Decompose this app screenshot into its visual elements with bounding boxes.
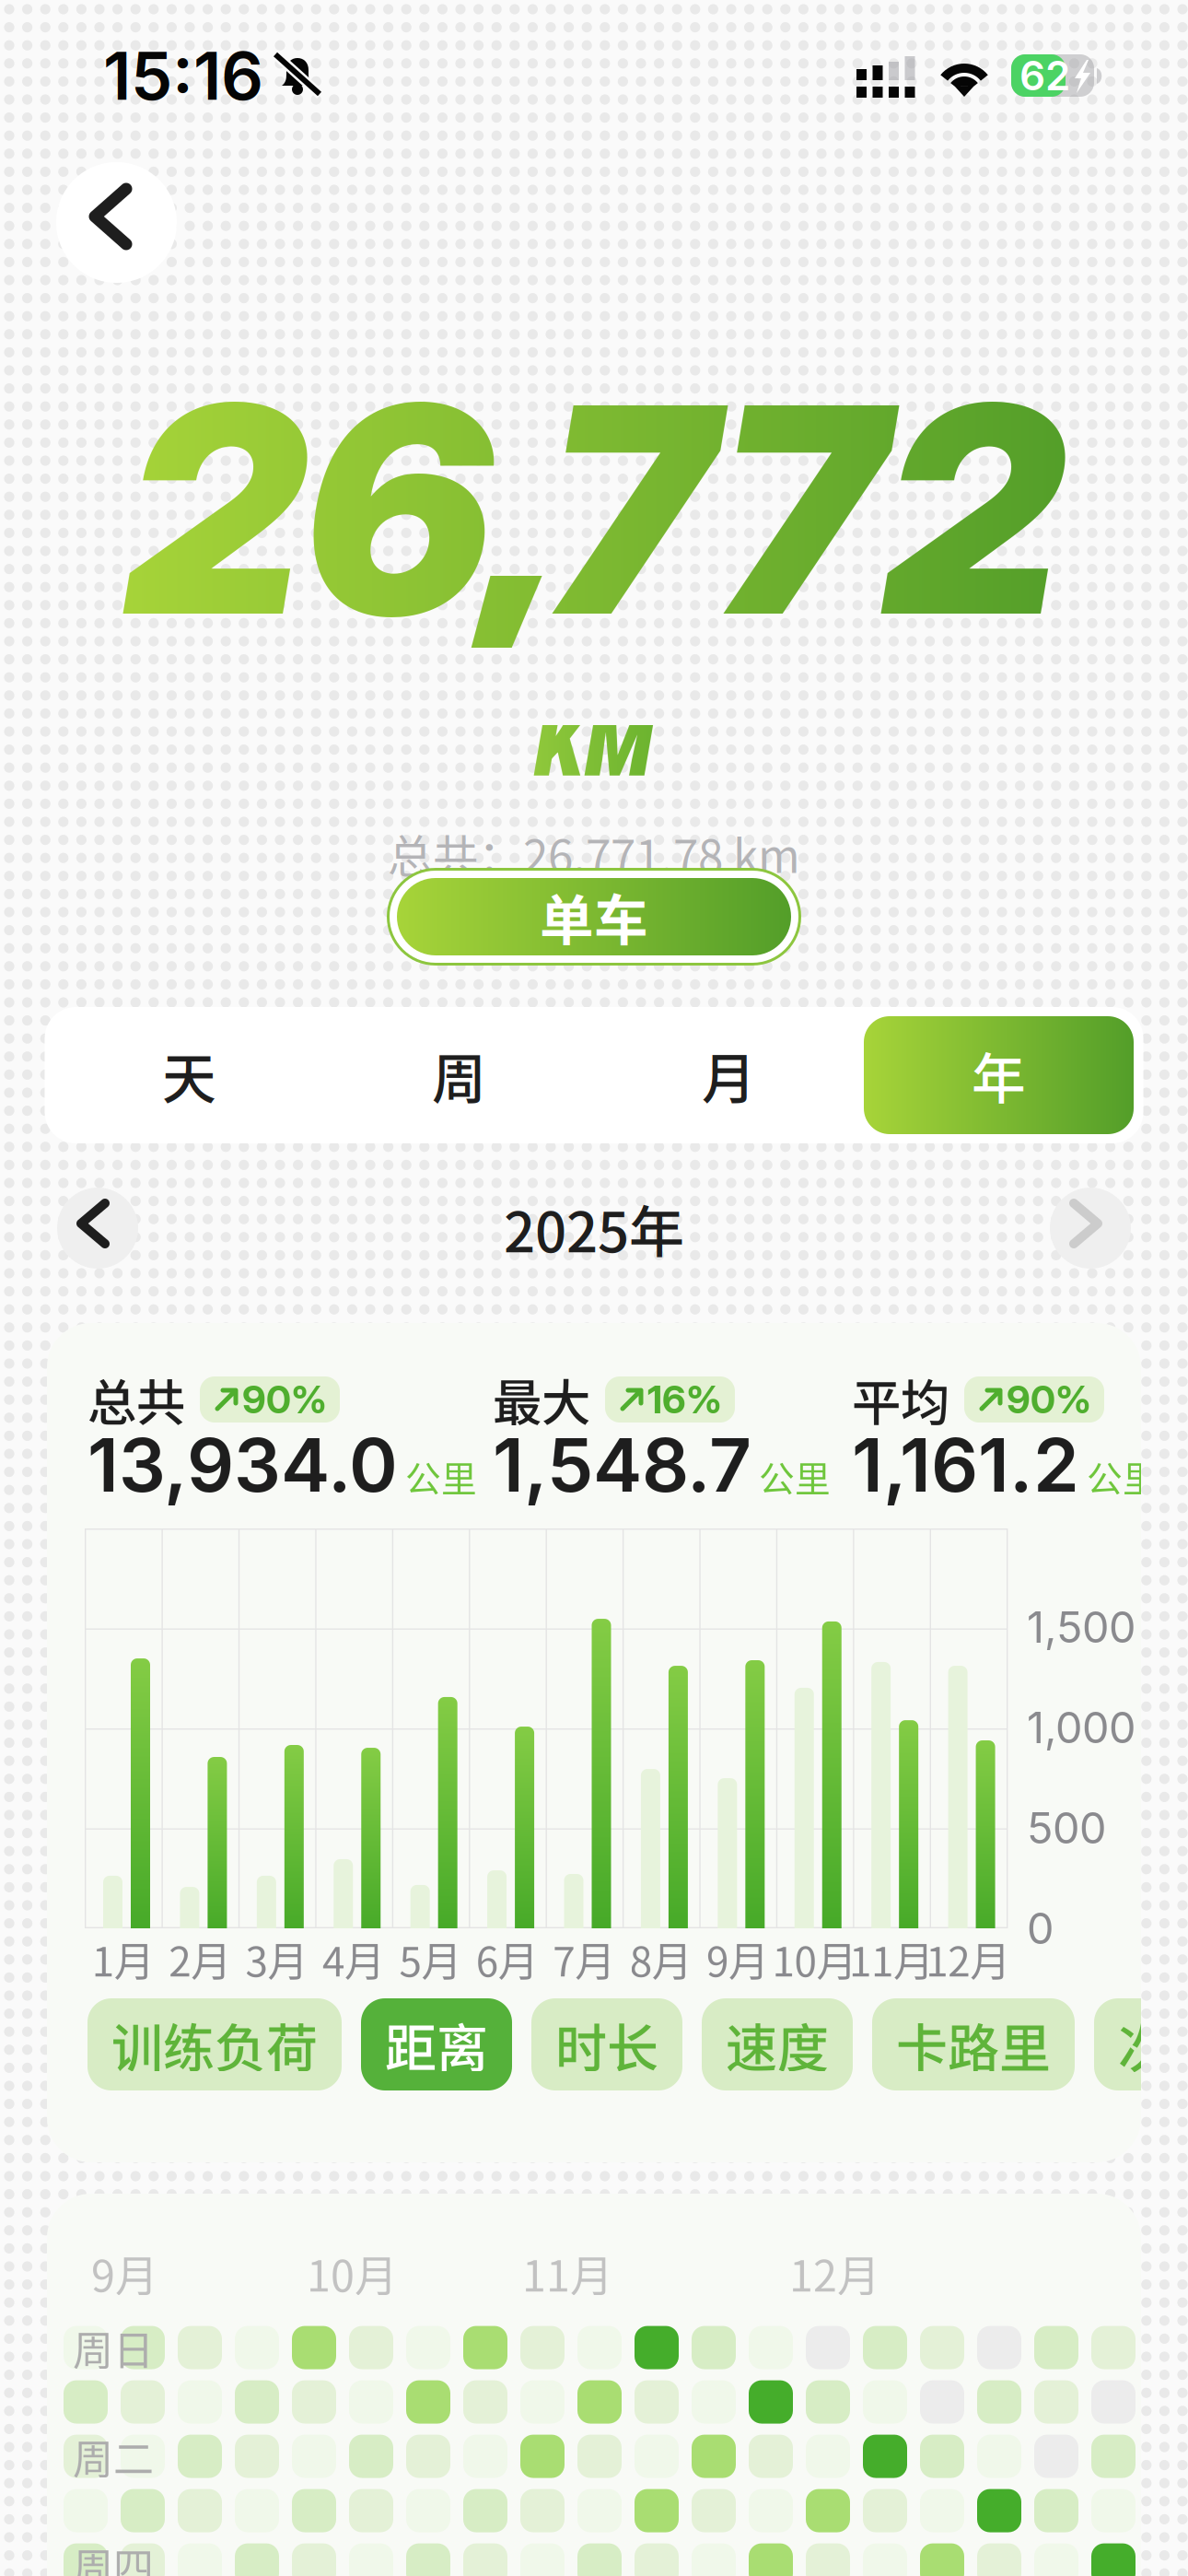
- button[interactable]: 月: [594, 1016, 864, 1134]
- staticText: 训练负荷: [111, 2007, 318, 2082]
- staticText: 7月: [553, 1929, 615, 1988]
- staticText: 2月: [169, 1929, 231, 1988]
- staticText: 周四: [73, 2536, 154, 2576]
- staticText: 最大: [493, 1364, 590, 1435]
- staticText: 1,161.2: [852, 1420, 1079, 1509]
- staticText: 6月: [476, 1929, 539, 1988]
- staticText: 1,500: [1027, 1601, 1136, 1653]
- staticText: 9月: [91, 2242, 158, 2304]
- staticText: 公里: [1087, 1451, 1159, 1502]
- staticText: 速度: [726, 2007, 829, 2082]
- staticText: 天: [162, 1036, 216, 1114]
- staticText: 90%: [242, 1376, 327, 1423]
- button[interactable]: 周: [324, 1016, 594, 1134]
- staticText: 15:16: [103, 35, 263, 116]
- button[interactable]: Previous year: [57, 1188, 138, 1269]
- button[interactable]: 距离: [361, 1998, 512, 2090]
- staticText: 距离: [385, 2007, 488, 2082]
- button[interactable]: 卡路里: [872, 1998, 1075, 2090]
- button[interactable]: 速度: [702, 1998, 853, 2090]
- staticText: 公里: [405, 1451, 477, 1502]
- staticText: 总共：26,771.78 km: [388, 820, 800, 886]
- staticText: 62: [1019, 51, 1070, 100]
- button[interactable]: 单车: [387, 868, 801, 966]
- staticText: 11月: [522, 2242, 613, 2304]
- staticText: 1,000: [1027, 1701, 1136, 1754]
- button[interactable]: 次数: [1094, 1998, 1188, 2090]
- staticText: 500: [1027, 1802, 1106, 1854]
- button[interactable]: 时长: [531, 1998, 682, 2090]
- button[interactable]: Back: [56, 162, 177, 283]
- staticText: 月: [702, 1036, 756, 1114]
- staticText: 3月: [245, 1929, 308, 1988]
- staticText: 90%: [1007, 1376, 1091, 1423]
- staticText: 1,548.7: [493, 1420, 751, 1509]
- staticText: 4月: [322, 1929, 385, 1988]
- staticText: 9月: [706, 1929, 769, 1988]
- staticText: 次数: [1118, 2007, 1188, 2082]
- staticText: 时长: [555, 2007, 658, 2082]
- staticText: 13,934.0: [87, 1420, 398, 1509]
- button[interactable]: 训练负荷: [87, 1998, 342, 2090]
- staticText: 卡路里: [896, 2007, 1051, 2082]
- staticText: 2025年: [504, 1188, 684, 1268]
- staticText: 12月: [789, 2242, 880, 2304]
- staticText: 12月: [926, 1929, 1011, 1988]
- staticText: 平均: [852, 1364, 949, 1435]
- staticText: 10月: [307, 2242, 398, 2304]
- staticText: 5月: [399, 1929, 462, 1988]
- staticText: 8月: [630, 1929, 692, 1988]
- staticText: 周: [432, 1036, 486, 1114]
- staticText: 周二: [73, 2427, 154, 2486]
- staticText: 年: [972, 1036, 1026, 1114]
- staticText: 11月: [849, 1929, 934, 1988]
- staticText: 1月: [92, 1929, 154, 1988]
- staticText: 10月: [772, 1929, 857, 1988]
- staticText: 周日: [73, 2318, 154, 2377]
- staticText: 0: [1027, 1902, 1054, 1954]
- button[interactable]: 天: [54, 1016, 324, 1134]
- button[interactable]: 年: [864, 1016, 1134, 1134]
- button[interactable]: Next year: [1050, 1188, 1131, 1269]
- staticText: 16%: [647, 1376, 722, 1423]
- staticText: 公里: [759, 1451, 831, 1502]
- staticText: 单车: [540, 878, 648, 956]
- staticText: 总共: [87, 1364, 185, 1435]
